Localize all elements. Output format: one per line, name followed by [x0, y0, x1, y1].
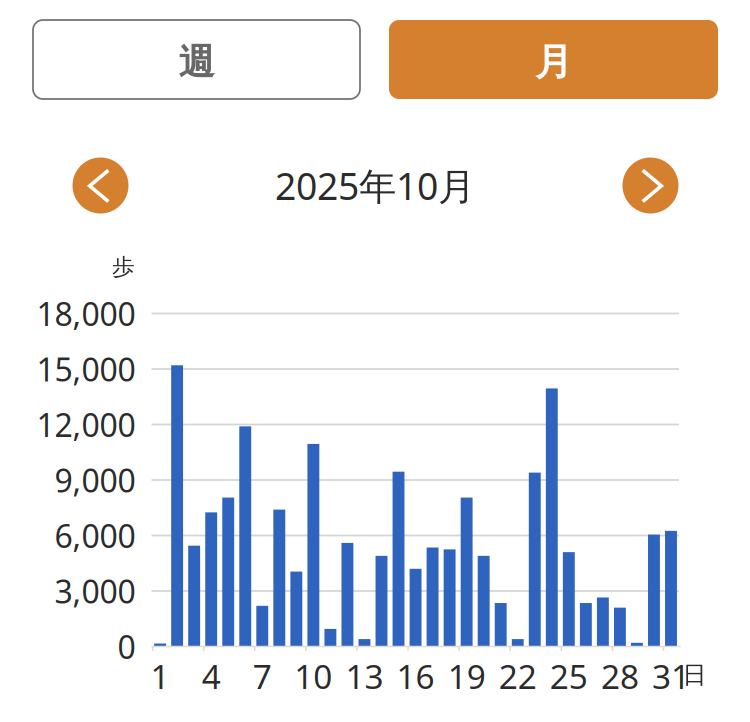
staticText: 1 [151, 654, 170, 698]
staticText: 9,000 [54, 459, 135, 501]
staticText: 28 [601, 654, 639, 698]
staticText: 25 [550, 654, 588, 698]
staticText: 2025年10月 [275, 161, 475, 210]
button[interactable]: 次の月 [622, 157, 678, 213]
staticText: 4 [202, 654, 221, 698]
staticText: 0 [117, 625, 135, 668]
staticText: 16 [397, 654, 435, 698]
staticText: 13 [345, 654, 383, 698]
button[interactable]: 週 [33, 20, 360, 99]
staticText: 週 [178, 40, 214, 84]
staticText: 3,000 [54, 570, 135, 612]
staticText: 18,000 [36, 292, 135, 335]
button[interactable]: 月 [389, 20, 718, 99]
staticText: 月 [535, 39, 572, 85]
staticText: 日 [682, 660, 706, 690]
staticText: 10 [294, 654, 332, 698]
staticText: 6,000 [54, 514, 135, 557]
staticText: 12,000 [36, 403, 135, 446]
button[interactable]: 前の月 [72, 157, 128, 213]
staticText: 歩 [112, 253, 135, 281]
staticText: 22 [499, 654, 537, 698]
staticText: 15,000 [36, 348, 135, 390]
staticText: 19 [448, 654, 486, 698]
staticText: 7 [253, 654, 272, 698]
staticText: 31 [652, 654, 690, 698]
